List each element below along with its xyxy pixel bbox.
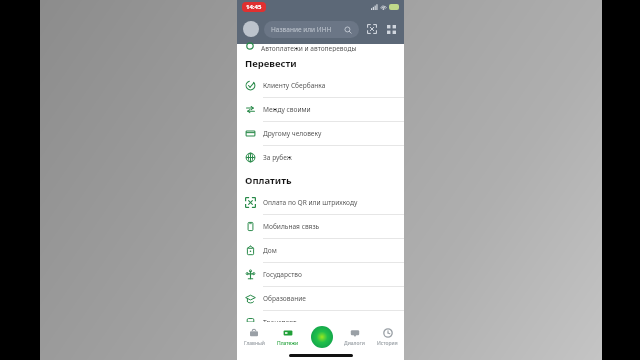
button[interactable]: Диалоги [338, 322, 371, 352]
staticText: Перевести [245, 57, 297, 70]
button[interactable]: Между своими [237, 98, 404, 122]
staticText: Другому человеку [263, 129, 322, 138]
staticText: 14:45 [246, 3, 262, 11]
button[interactable]: Assistant [311, 326, 333, 348]
button[interactable]: История [371, 322, 404, 352]
staticText: Образование [263, 294, 306, 303]
staticText: Государство [263, 270, 302, 279]
button[interactable]: Платежи [271, 322, 305, 352]
staticText: Клиенту Сбербанка [263, 81, 326, 90]
staticText: Платежи [277, 340, 299, 347]
staticText: Транспорт [263, 318, 297, 327]
staticText: Оплата по QR или штрихкоду [263, 198, 358, 207]
staticText: История [377, 340, 398, 347]
button[interactable]: Автоплатежи и автопереводы [237, 44, 404, 52]
button[interactable]: Государство [237, 263, 404, 287]
staticText: Мобильная связь [263, 222, 320, 231]
button[interactable]: За рубеж [237, 146, 404, 169]
button[interactable]: Menu grid [384, 22, 398, 36]
other: Search [344, 26, 352, 34]
staticText: Между своими [263, 105, 311, 114]
button[interactable]: Работа и бизнес [237, 335, 404, 348]
staticText: Автоплатежи и автопереводы [261, 44, 357, 52]
button[interactable]: Оплата по QR или штрихкоду [237, 191, 404, 215]
button[interactable]: Profile [243, 21, 259, 37]
button[interactable]: Scan QR [365, 22, 379, 36]
button[interactable]: Другому человеку [237, 122, 404, 146]
staticText: Работа и бизнес [262, 338, 315, 347]
button[interactable]: Транспорт [237, 311, 404, 335]
button[interactable]: Образование [237, 287, 404, 311]
button[interactable]: Дом [237, 239, 404, 263]
button[interactable]: Мобильная связь [237, 215, 404, 239]
button[interactable]: Название или ИНН [264, 21, 359, 38]
staticText: Главный [244, 340, 265, 347]
staticText: Название или ИНН [271, 25, 332, 34]
button[interactable]: Главный [237, 322, 271, 352]
staticText: Диалоги [344, 340, 365, 347]
staticText: Оплатить [245, 174, 292, 187]
staticText: За рубеж [263, 153, 292, 162]
button[interactable]: Клиенту Сбербанка [237, 74, 404, 98]
staticText: Дом [263, 246, 277, 255]
